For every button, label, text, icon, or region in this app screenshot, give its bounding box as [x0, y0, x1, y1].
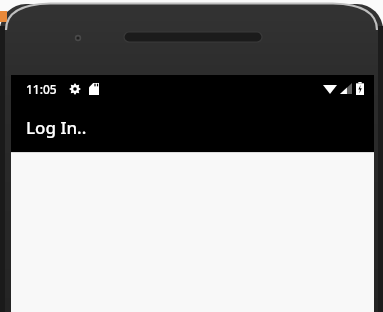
button[interactable]: Log In..	[11, 102, 374, 152]
other: Mobile signal	[340, 83, 352, 94]
staticText: 11:05	[26, 81, 57, 97]
other: Wi-Fi	[323, 83, 337, 94]
other: Storage	[89, 83, 99, 95]
other: Battery	[356, 82, 364, 95]
other: Settings	[69, 83, 81, 95]
staticText: Log In..	[26, 116, 87, 139]
